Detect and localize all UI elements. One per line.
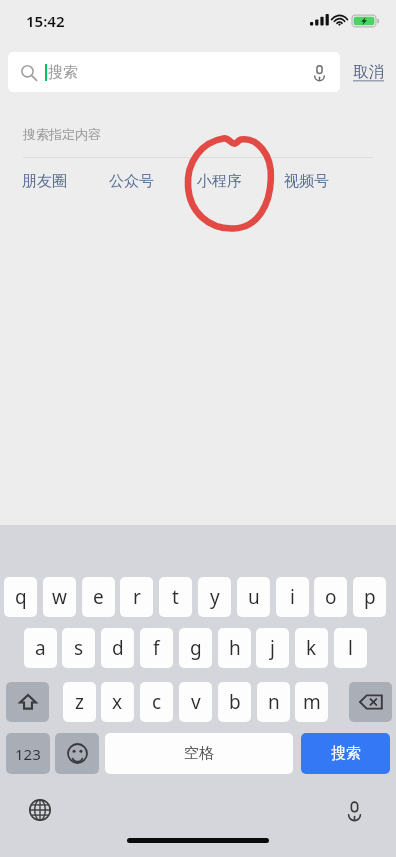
staticText: u xyxy=(248,584,260,610)
staticText: b xyxy=(229,689,241,715)
button[interactable]: 搜索 xyxy=(8,52,340,92)
staticText: 123 xyxy=(15,744,41,764)
staticText: 空格 xyxy=(184,744,214,763)
button[interactable]: 视频号 xyxy=(284,166,340,196)
button[interactable]: 搜索 xyxy=(301,733,390,774)
button[interactable]: u xyxy=(237,577,270,617)
staticText: 视频号 xyxy=(284,172,329,191)
button[interactable]: v xyxy=(179,682,212,722)
button[interactable]: s xyxy=(62,628,95,668)
button[interactable]: o xyxy=(314,577,347,617)
staticText: v xyxy=(191,689,201,715)
button[interactable]: z xyxy=(63,682,96,722)
button[interactable]: y xyxy=(198,577,231,617)
button[interactable]: w xyxy=(43,577,76,617)
staticText: s xyxy=(74,635,84,661)
button[interactable]: 朋友圈 xyxy=(22,166,78,196)
button[interactable]: 小程序 xyxy=(197,166,253,196)
button[interactable]: d xyxy=(101,628,134,668)
button[interactable]: c xyxy=(140,682,173,722)
button[interactable]: 取消 xyxy=(344,52,392,92)
staticText: j xyxy=(270,635,275,661)
staticText: 公众号 xyxy=(109,172,154,191)
staticText: z xyxy=(75,689,84,715)
staticText: t xyxy=(172,584,179,610)
staticText: d xyxy=(112,635,124,661)
button[interactable]: f xyxy=(140,628,173,668)
staticText: c xyxy=(152,689,162,715)
staticText: y xyxy=(210,584,220,610)
button[interactable]: x xyxy=(101,682,134,722)
staticText: 取消 xyxy=(353,62,384,82)
button[interactable]: Dictation xyxy=(332,790,376,830)
staticText: q xyxy=(15,584,27,610)
button[interactable]: Backspace xyxy=(349,682,392,722)
button[interactable]: q xyxy=(4,577,37,617)
staticText: o xyxy=(325,584,337,610)
button[interactable]: g xyxy=(179,628,212,668)
staticText: 搜索 xyxy=(331,744,361,763)
button[interactable]: Voice search xyxy=(302,55,336,89)
staticText: m xyxy=(303,689,321,715)
button[interactable]: i xyxy=(276,577,309,617)
staticText: r xyxy=(133,584,141,610)
button[interactable]: Shift xyxy=(6,682,49,722)
staticText: e xyxy=(93,584,104,610)
staticText: p xyxy=(364,584,376,610)
button[interactable]: j xyxy=(256,628,289,668)
button[interactable]: a xyxy=(24,628,57,668)
button[interactable]: k xyxy=(295,628,328,668)
button[interactable]: l xyxy=(334,628,367,668)
staticText: n xyxy=(268,689,280,715)
button[interactable]: 公众号 xyxy=(109,166,165,196)
button[interactable]: Switch keyboard language xyxy=(18,790,62,830)
button[interactable]: m xyxy=(295,682,328,722)
button[interactable]: e xyxy=(82,577,115,617)
staticText: g xyxy=(190,635,202,661)
button[interactable]: b xyxy=(218,682,251,722)
staticText: a xyxy=(35,635,46,661)
staticText: l xyxy=(348,635,353,661)
button[interactable]: r xyxy=(120,577,153,617)
staticText: k xyxy=(306,635,317,661)
button[interactable]: p xyxy=(353,577,386,617)
button[interactable]: t xyxy=(159,577,192,617)
staticText: 搜索指定内容 xyxy=(23,126,101,142)
staticText: i xyxy=(290,584,295,610)
staticText: f xyxy=(153,635,160,661)
staticText: 朋友圈 xyxy=(22,172,67,191)
staticText: 15:42 xyxy=(26,11,65,31)
button[interactable]: n xyxy=(257,682,290,722)
button[interactable]: 空格 xyxy=(105,733,293,774)
button[interactable]: 123 xyxy=(6,733,50,774)
button[interactable]: Emoji xyxy=(55,733,99,774)
staticText: x xyxy=(112,689,123,715)
staticText: 搜索 xyxy=(48,63,78,82)
staticText: w xyxy=(52,584,67,610)
staticText: 小程序 xyxy=(197,172,242,191)
button[interactable]: h xyxy=(218,628,251,668)
staticText: h xyxy=(229,635,241,661)
